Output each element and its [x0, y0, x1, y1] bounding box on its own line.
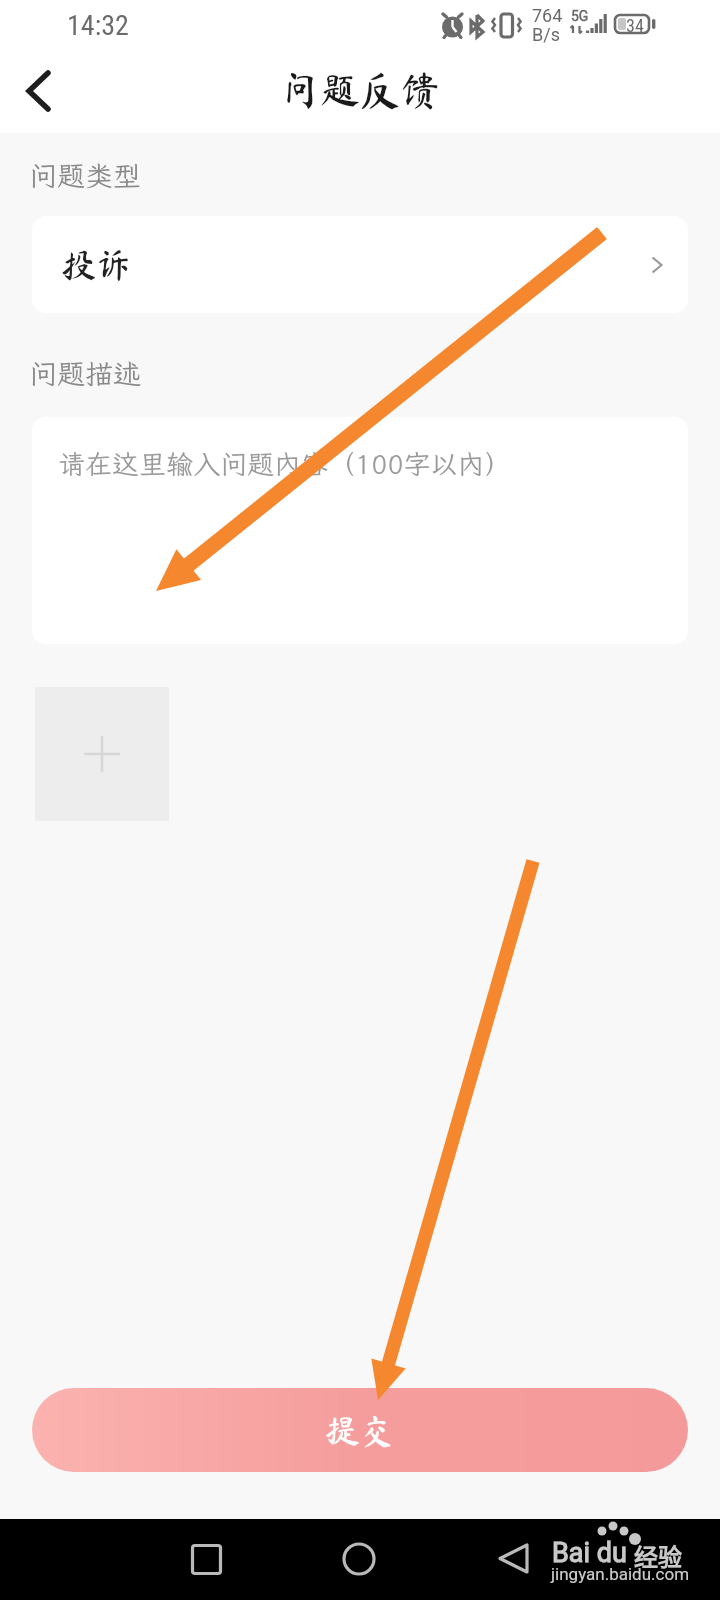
- staticText: 提交: [325, 1413, 396, 1448]
- button[interactable]: 投诉: [32, 216, 688, 313]
- staticText: Bai du: [552, 1537, 627, 1569]
- button[interactable]: 提交: [32, 1388, 688, 1472]
- staticText: 问题类型: [29, 157, 142, 194]
- staticText: 问题反馈: [280, 70, 440, 110]
- button[interactable]: Back: [4, 58, 76, 130]
- staticText: 14:32: [67, 9, 129, 42]
- staticText: 投诉: [61, 247, 132, 282]
- staticText: 问题描述: [29, 355, 142, 392]
- staticText: jingyan.baidu.com: [551, 1564, 690, 1584]
- staticText: 764 B/s: [532, 5, 563, 45]
- button[interactable]: Recents: [191, 1544, 222, 1575]
- button[interactable]: Back: [497, 1541, 532, 1576]
- button[interactable]: 请在这里输入问题内容（100字以内）: [32, 417, 688, 644]
- staticText: 请在这里输入问题内容（100字以内）: [58, 446, 512, 482]
- staticText: 5G: [571, 8, 589, 24]
- staticText: 经验: [634, 1538, 682, 1573]
- staticText: 34: [626, 15, 644, 36]
- button[interactable]: Home: [342, 1542, 376, 1576]
